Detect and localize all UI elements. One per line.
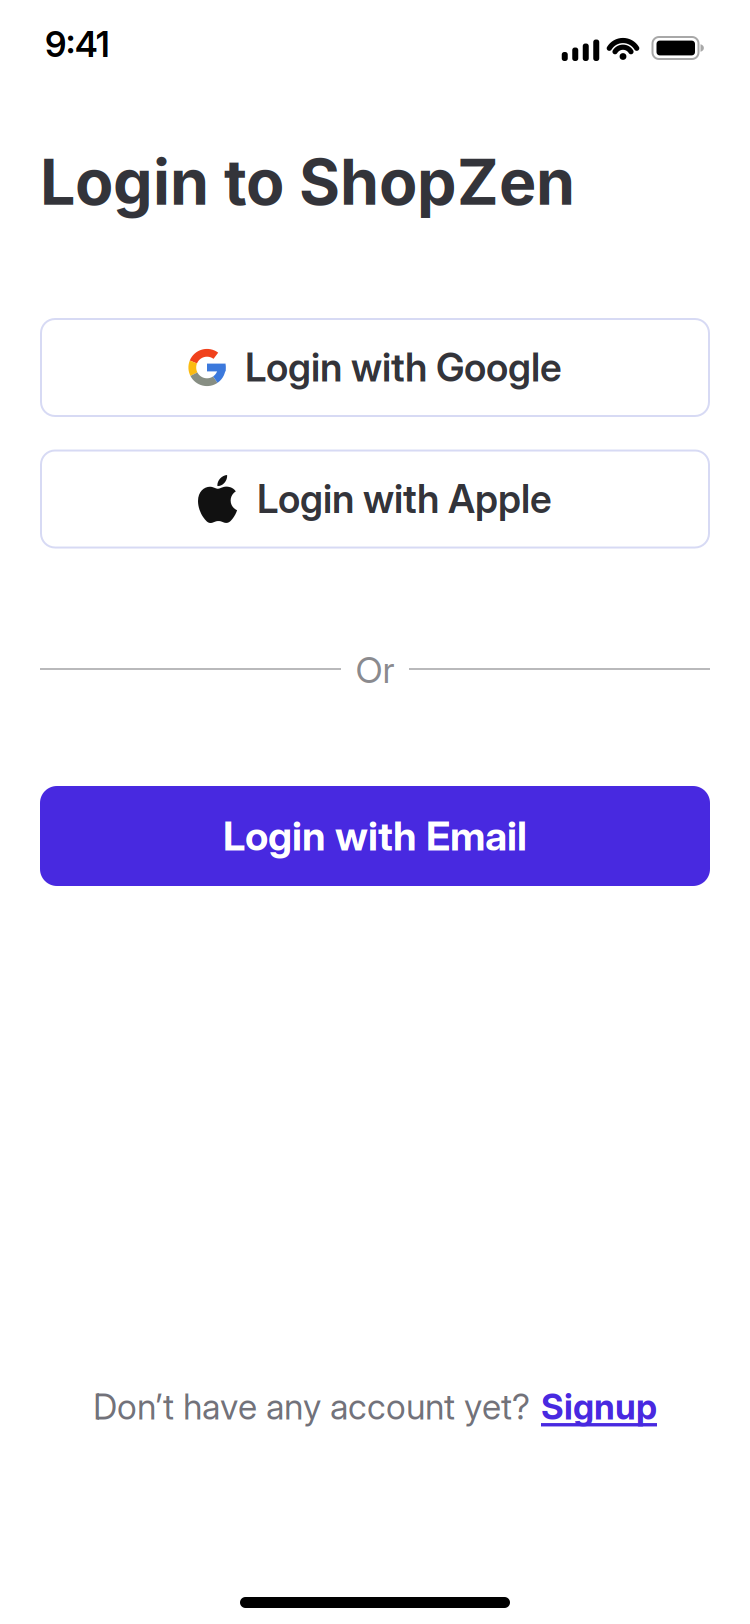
staticText: 9:41 bbox=[45, 23, 110, 65]
staticText: Login with Google bbox=[245, 344, 562, 391]
button[interactable]: Login with Google bbox=[40, 318, 710, 417]
staticText: Login with Email bbox=[223, 812, 527, 860]
staticText: Signup bbox=[541, 1386, 657, 1428]
staticText: Login to ShopZen bbox=[40, 144, 575, 220]
button[interactable]: Signup bbox=[541, 1386, 657, 1428]
staticText: Or bbox=[355, 648, 394, 692]
button[interactable]: Login with Apple bbox=[40, 449, 710, 548]
staticText: Don’t have any account yet? bbox=[93, 1386, 530, 1428]
staticText: Login with Apple bbox=[257, 476, 552, 522]
button[interactable]: Login with Email bbox=[40, 786, 710, 886]
